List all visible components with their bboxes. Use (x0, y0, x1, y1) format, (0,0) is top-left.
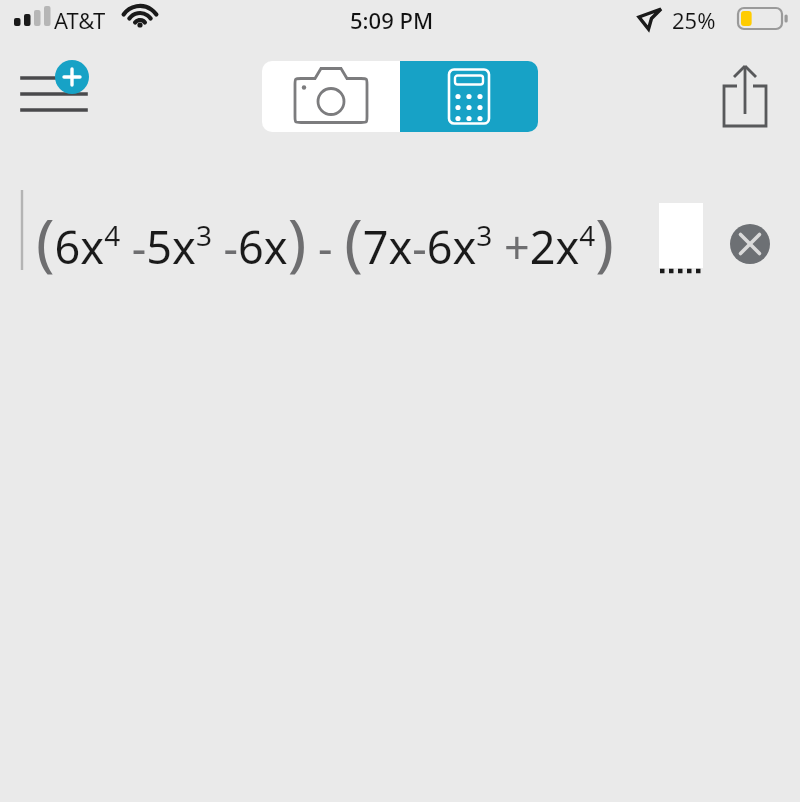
button[interactable]: Calculator (400, 61, 538, 132)
staticText: (6x4 -5x3 -6x) - (7x-6x3 +2x4) (36, 198, 614, 282)
button[interactable]: Menu, add new (14, 58, 90, 120)
button[interactable]: Camera (262, 61, 400, 132)
button[interactable]: Share (712, 62, 778, 132)
staticText: 5:09 PM (350, 5, 434, 35)
staticText: AT&T (54, 5, 106, 35)
button[interactable]: Clear (730, 224, 770, 264)
staticText: 25% (672, 5, 716, 35)
